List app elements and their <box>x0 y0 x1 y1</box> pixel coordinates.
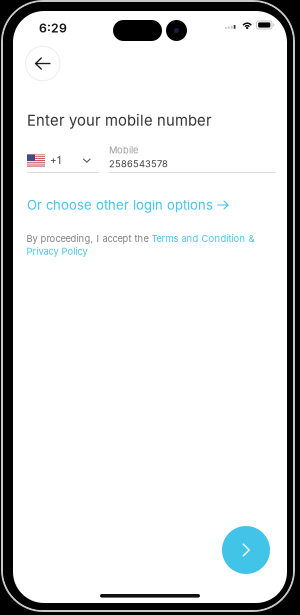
button[interactable]: Select country code <box>27 152 99 173</box>
staticText: Privacy Policy <box>26 246 87 257</box>
staticText: Mobile <box>109 144 138 156</box>
staticText: By proceeding, I accept the <box>26 233 151 244</box>
staticText: 2586543578 <box>109 158 168 170</box>
staticText: Enter your mobile number <box>27 111 212 129</box>
staticText: Terms and Condition & <box>151 233 254 244</box>
staticText: 6:29 <box>39 20 67 35</box>
button[interactable]: Continue <box>222 526 270 574</box>
staticText: Or choose other login options <box>27 197 213 213</box>
button[interactable]: Or choose other login options <box>27 197 228 213</box>
staticText: +1 <box>50 154 61 167</box>
button[interactable]: Back <box>25 46 60 81</box>
